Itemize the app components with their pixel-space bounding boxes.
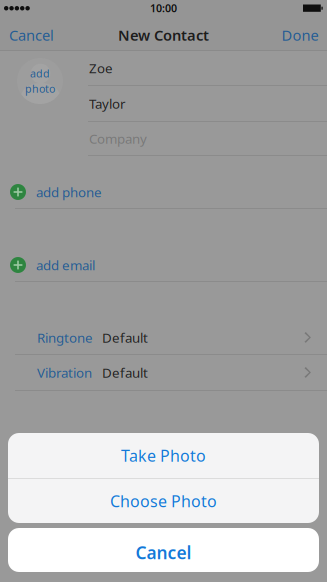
staticText: add email xyxy=(36,256,95,274)
staticText: Choose Photo xyxy=(110,490,217,512)
staticText: Cancel xyxy=(135,541,191,564)
staticText: add xyxy=(30,66,50,80)
button[interactable]: Vibration xyxy=(0,355,327,391)
staticText: Default xyxy=(102,329,148,346)
staticText: photo xyxy=(25,81,55,96)
staticText: Take Photo xyxy=(121,445,206,466)
staticText: Default xyxy=(102,364,148,381)
button[interactable]: Take Photo xyxy=(8,433,319,478)
button[interactable]: add phone xyxy=(0,156,327,209)
staticText: Company xyxy=(89,130,147,147)
button[interactable]: Cancel xyxy=(8,528,319,572)
staticText: Cancel xyxy=(9,25,54,45)
button[interactable]: add email xyxy=(0,209,327,282)
staticText: Taylor xyxy=(89,95,126,112)
staticText: Zoe xyxy=(89,59,113,77)
button[interactable]: Add photo xyxy=(17,58,63,104)
button[interactable]: Cancel xyxy=(0,19,63,50)
staticText: Ringtone xyxy=(37,329,93,346)
button[interactable]: Choose Photo xyxy=(8,479,319,523)
staticText: add phone xyxy=(36,183,102,201)
staticText: Vibration xyxy=(37,364,92,381)
button[interactable]: Ringtone xyxy=(0,321,327,355)
staticText: Done xyxy=(281,25,318,45)
staticText: 10:00 xyxy=(150,1,177,15)
staticText: New Contact xyxy=(118,25,209,45)
button[interactable]: Done xyxy=(273,19,327,50)
